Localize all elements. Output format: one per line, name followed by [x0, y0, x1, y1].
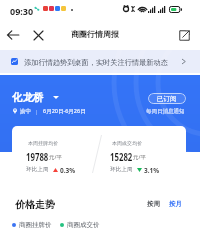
button[interactable]: Close: [27, 24, 49, 46]
staticText: 6月20日-6月26日: [43, 107, 86, 115]
staticText: 元/平: [49, 153, 63, 161]
staticText: |: [35, 108, 39, 115]
staticText: 商圈成交价: [67, 221, 100, 229]
button[interactable]: Back: [2, 24, 24, 46]
staticText: 按月: [169, 200, 182, 208]
button[interactable]: 按周: [144, 198, 163, 210]
staticText: 已订阅: [157, 95, 177, 103]
staticText: 19788: [26, 150, 57, 164]
staticText: 15282: [110, 150, 141, 164]
staticText: 添加行情趋势到桌面，实时关注行情最新动态: [24, 58, 168, 67]
staticText: 环比上周: [26, 166, 49, 173]
staticText: 0.3%: [60, 166, 76, 175]
staticText: 按周: [147, 200, 160, 208]
staticText: 渝中: [20, 108, 31, 115]
staticText: 化龙桥: [12, 91, 44, 104]
button[interactable]: 按月: [166, 198, 185, 210]
staticText: 元/平: [133, 153, 147, 161]
staticText: 每周日消息通知: [146, 108, 185, 115]
staticText: 本周成交均价: [112, 140, 142, 146]
staticText: 商圈挂牌价: [19, 221, 52, 229]
button[interactable]: 已订阅: [148, 93, 186, 104]
button[interactable]: 化龙桥: [12, 91, 59, 104]
staticText: 本周挂牌均价: [28, 140, 58, 146]
staticText: 价格走势: [15, 198, 55, 211]
button[interactable]: 添加行情趋势到桌面，实时关注行情最新动态: [0, 50, 200, 73]
button[interactable]: Share: [173, 24, 195, 46]
staticText: 环比上周: [110, 166, 133, 173]
staticText: 商圈行情周报: [71, 29, 119, 39]
staticText: 3.1%: [144, 166, 160, 175]
staticText: 09:30: [10, 5, 34, 17]
